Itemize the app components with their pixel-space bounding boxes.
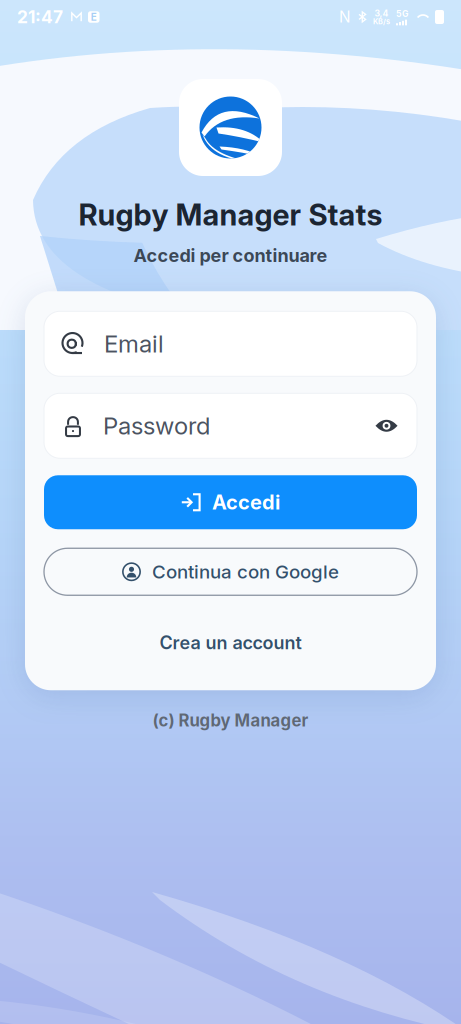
button[interactable]: Crea un account bbox=[44, 595, 417, 690]
staticText: E bbox=[91, 11, 97, 23]
staticText: Continua con Google bbox=[152, 560, 339, 583]
staticText: 5G bbox=[396, 9, 409, 19]
staticText: Accedi per continuare bbox=[133, 244, 327, 266]
staticText: 3,4 bbox=[374, 8, 388, 19]
staticText: Email bbox=[104, 329, 164, 358]
staticText: N bbox=[339, 8, 351, 26]
button[interactable]: Accedi bbox=[44, 475, 417, 529]
button[interactable]: Password bbox=[44, 393, 417, 458]
staticText: KB/s bbox=[373, 17, 390, 26]
staticText: Password bbox=[103, 411, 210, 440]
staticText: Crea un account bbox=[159, 632, 301, 654]
staticText: (c) Rugby Manager bbox=[152, 710, 308, 730]
button[interactable]: Email bbox=[44, 311, 417, 376]
staticText: Accedi bbox=[212, 490, 280, 514]
staticText: 21:47 bbox=[17, 6, 63, 27]
staticText: Rugby Manager Stats bbox=[78, 197, 382, 232]
button[interactable]: Continua con Google bbox=[44, 548, 417, 595]
